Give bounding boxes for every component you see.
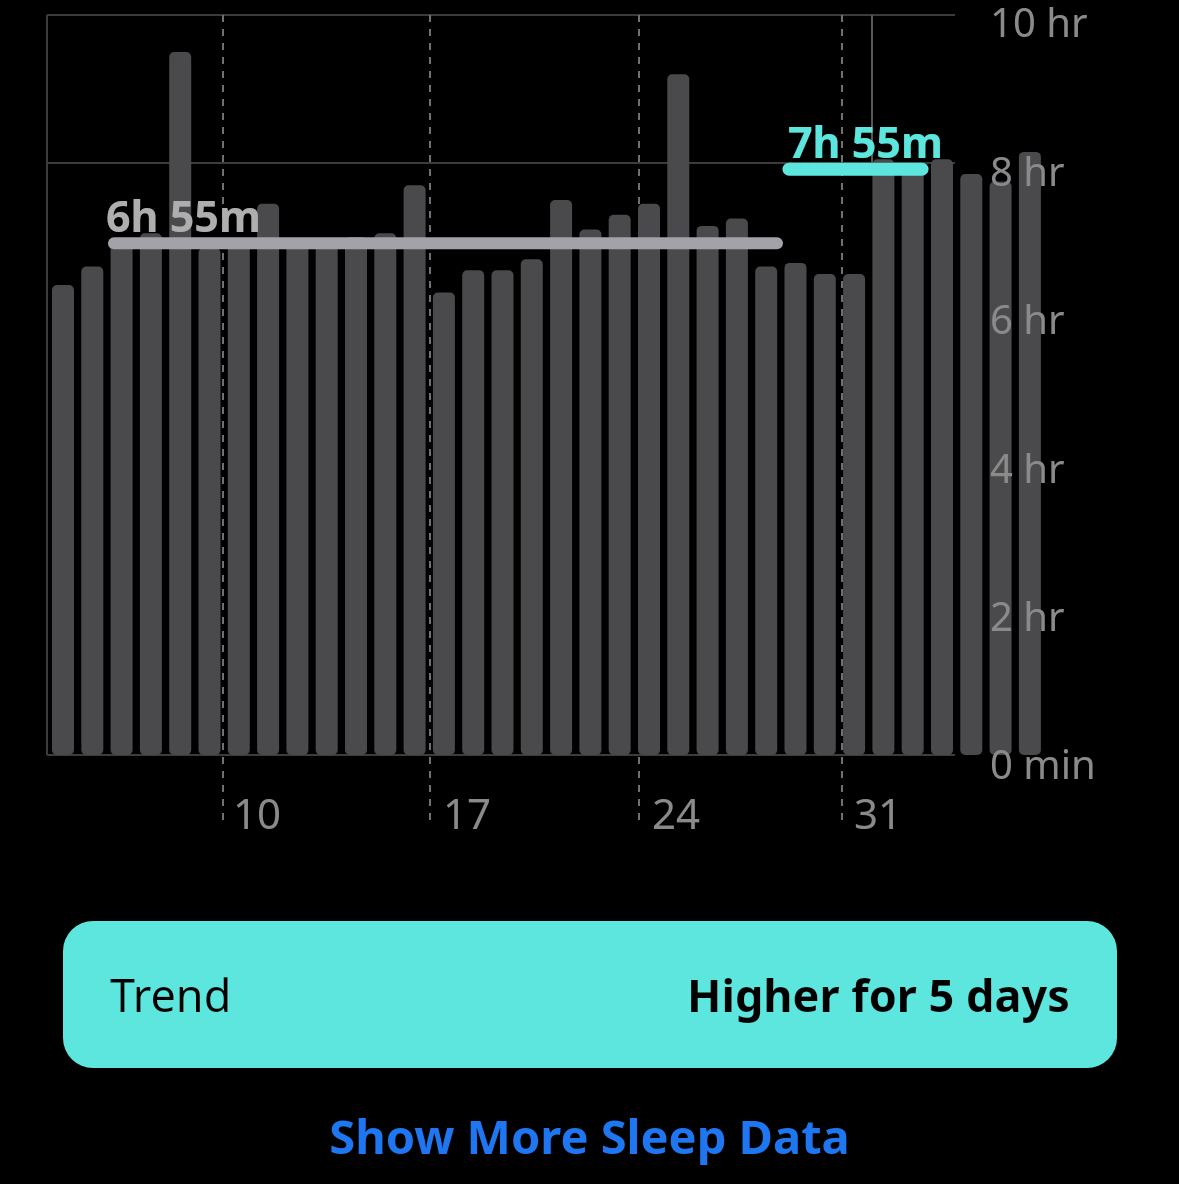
staticText: 31 — [854, 784, 903, 841]
button[interactable]: Show More Sleep Data — [0, 1098, 1179, 1174]
staticText: 2 hr — [990, 588, 1065, 642]
staticText: Trend — [110, 964, 232, 1025]
staticText: 24 — [652, 784, 701, 841]
staticText: 4 hr — [990, 440, 1065, 494]
staticText: 0 min — [990, 736, 1096, 790]
staticText: Show More Sleep Data — [329, 1104, 850, 1168]
staticText: 10 — [233, 784, 282, 841]
staticText: 8 hr — [990, 143, 1065, 197]
staticText: 17 — [443, 784, 492, 841]
staticText: 7h 55m — [788, 112, 943, 171]
staticText: Higher for 5 days — [687, 964, 1070, 1025]
staticText: 10 hr — [990, 0, 1088, 48]
staticText: 6h 55m — [106, 186, 261, 245]
button[interactable]: Trend — [63, 921, 1117, 1068]
staticText: 6 hr — [990, 291, 1065, 345]
